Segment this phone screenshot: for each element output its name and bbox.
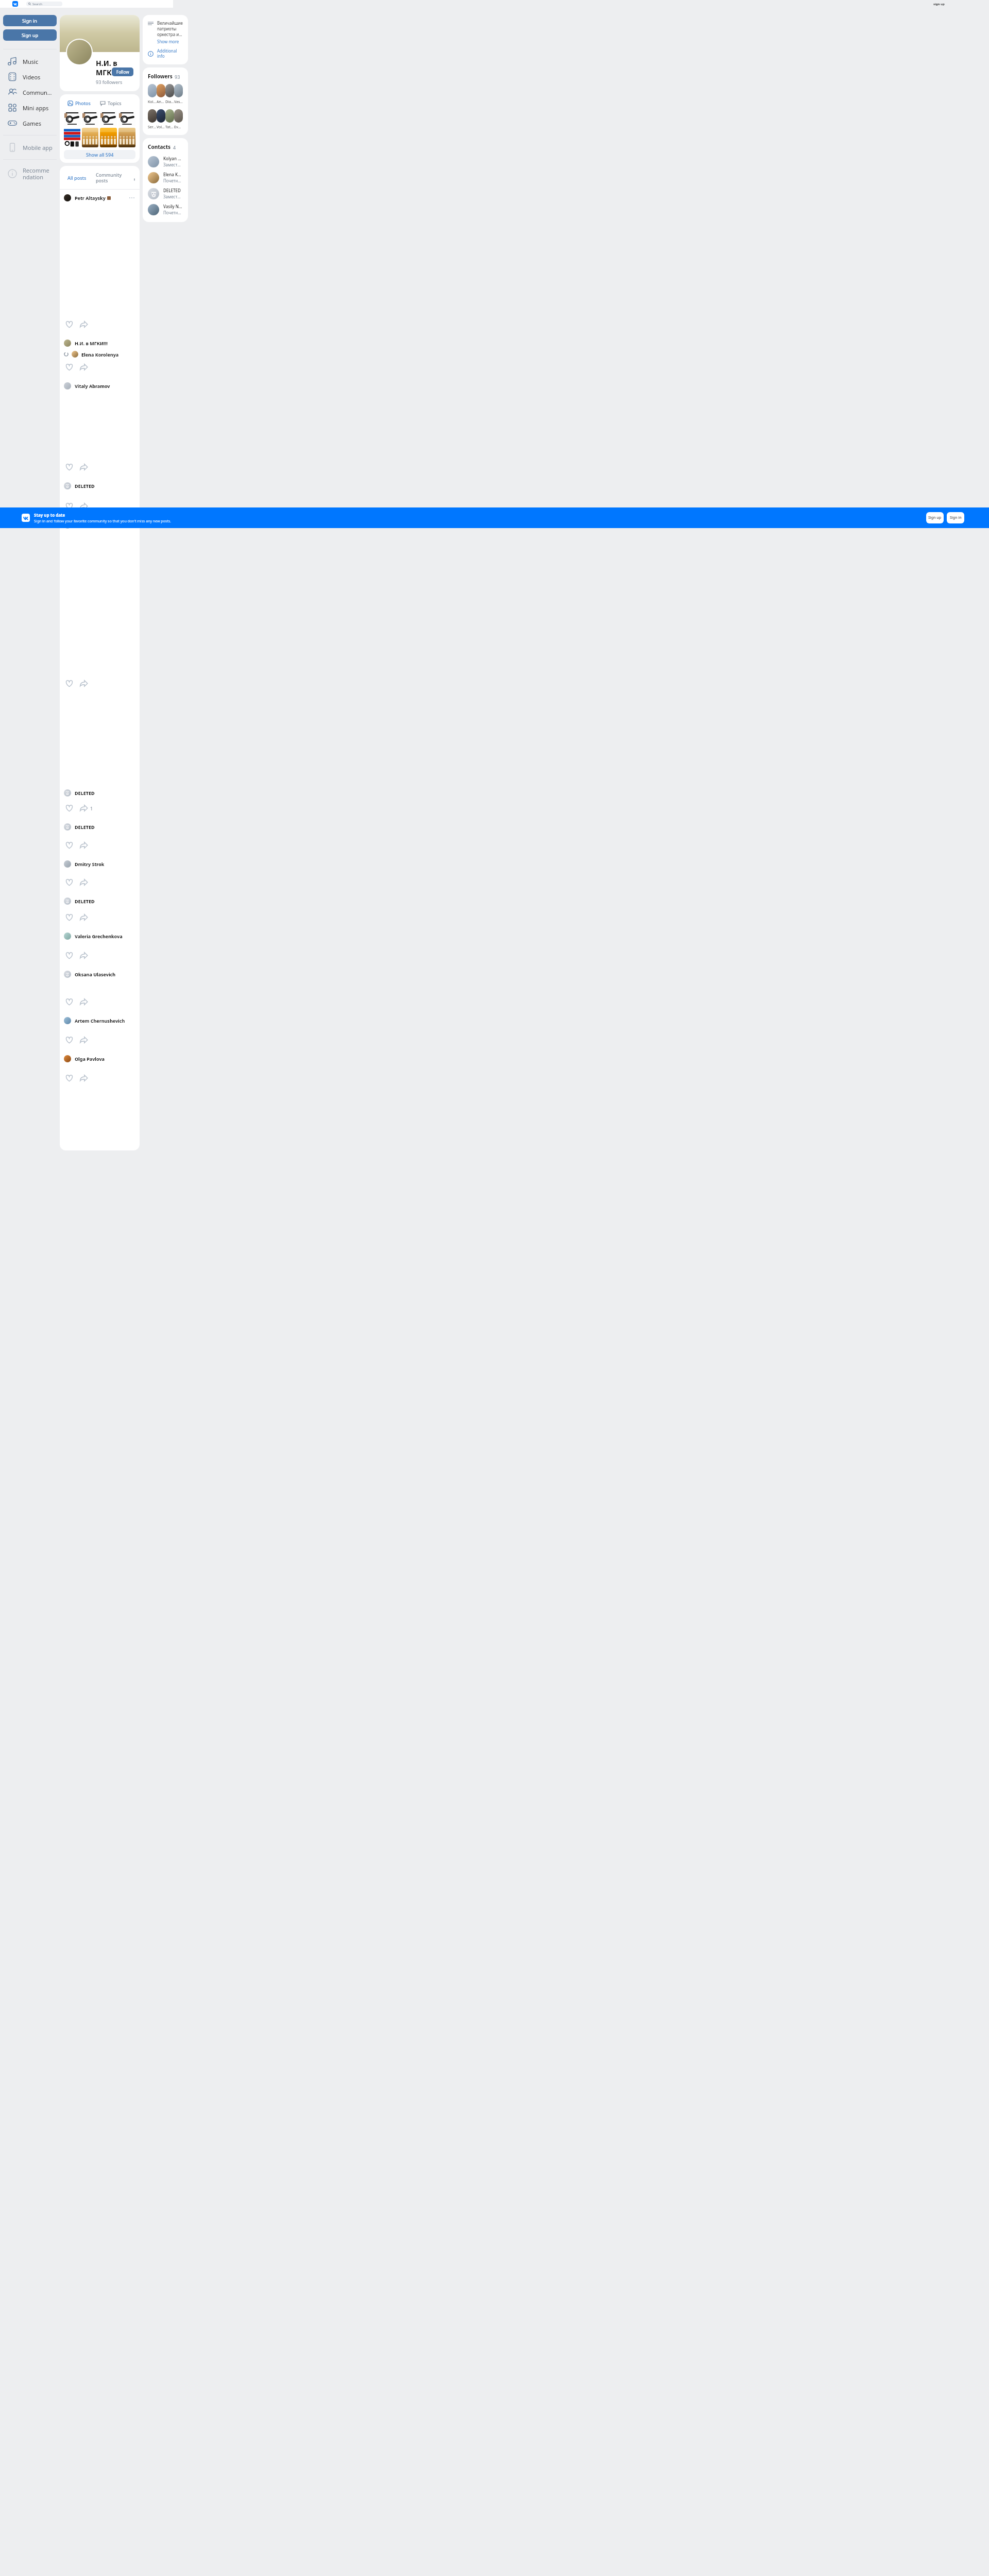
button[interactable]: Like <box>64 319 75 330</box>
button[interactable]: Saniš Filippovich <box>60 517 140 694</box>
button[interactable]: Н.И. в МГКИ!!! <box>60 335 140 378</box>
button[interactable] <box>67 40 92 64</box>
button[interactable]: Share <box>78 950 89 961</box>
button[interactable]: Show more <box>157 39 179 44</box>
button[interactable]: Like <box>64 877 75 888</box>
button[interactable]: All posts <box>64 173 90 183</box>
other: Like <box>65 804 74 812</box>
button[interactable]: sign up <box>933 2 945 6</box>
button[interactable]: Topics <box>96 98 125 108</box>
staticText: DELETED <box>75 483 95 489</box>
button[interactable]: Sign up <box>3 29 57 41</box>
staticText: Sign in <box>950 515 962 520</box>
button[interactable]: Vitaly Abramov <box>60 378 140 478</box>
button[interactable]: Vasily Nevmerzhitsky <box>148 202 183 217</box>
button[interactable] <box>82 111 98 126</box>
button[interactable]: Kolyan <box>148 84 157 105</box>
button[interactable]: Share <box>78 501 89 512</box>
button[interactable]: Recommendation technologies used <box>3 164 57 183</box>
button[interactable]: DELETED <box>60 785 140 819</box>
button[interactable]: Mini apps <box>3 100 57 115</box>
button[interactable]: Dmitry Strok <box>60 856 140 893</box>
staticText: 4 <box>173 144 176 150</box>
button[interactable]: Tatyana <box>165 109 174 130</box>
button[interactable]: Music <box>3 54 57 69</box>
button[interactable]: Share <box>78 996 89 1007</box>
button[interactable]: Show all 594 <box>64 150 135 159</box>
button[interactable]: Like <box>64 462 75 472</box>
button[interactable]: Diana <box>165 84 174 105</box>
button[interactable]: DELETED <box>60 478 140 517</box>
other: Like <box>65 320 74 329</box>
button[interactable]: Volga <box>157 109 165 130</box>
button[interactable]: Like <box>64 912 75 923</box>
button[interactable]: Sergey <box>148 109 157 130</box>
button[interactable]: Share <box>78 1073 89 1083</box>
button[interactable]: Share <box>78 912 89 923</box>
other: Share <box>79 679 88 688</box>
staticText: Diana <box>165 99 174 105</box>
button[interactable]: Olga Pavlova <box>60 1050 140 1089</box>
button[interactable]: Petr Altaysky <box>60 190 140 335</box>
button[interactable]: DELETED <box>60 819 140 856</box>
button[interactable]: Oksana Ulasevich <box>60 966 140 1012</box>
button[interactable]: Additional info <box>148 48 183 59</box>
button[interactable]: Elena Korolenya <box>148 170 183 185</box>
staticText: Community posts <box>96 172 131 184</box>
button[interactable]: Communities <box>3 84 57 100</box>
other: Like <box>65 951 74 960</box>
button[interactable]: Games <box>3 115 57 131</box>
button[interactable] <box>100 128 117 147</box>
button[interactable]: VK home <box>12 1 18 7</box>
staticText: Sign in <box>22 18 38 24</box>
button[interactable]: Share <box>78 1035 89 1045</box>
button[interactable]: Like <box>64 950 75 961</box>
button[interactable]: Photos <box>64 98 94 108</box>
button[interactable] <box>82 128 98 147</box>
button[interactable]: Share <box>78 462 89 472</box>
button[interactable]: Share <box>78 678 89 689</box>
button[interactable]: DELETED <box>148 186 183 201</box>
button[interactable]: Share <box>78 877 89 888</box>
button[interactable]: Sign in <box>947 512 964 523</box>
button[interactable] <box>118 128 135 147</box>
button[interactable]: Mobile app <box>3 140 57 155</box>
button[interactable]: Videos <box>3 69 57 84</box>
button[interactable]: Like <box>64 803 75 814</box>
button[interactable]: Sign in <box>3 15 57 26</box>
button[interactable]: Anastasia <box>157 84 165 105</box>
other: Share <box>79 804 88 812</box>
button[interactable]: Like <box>64 362 75 372</box>
button[interactable]: Valeria Grechenkova <box>60 928 140 966</box>
button[interactable]: Share <box>78 840 89 851</box>
button[interactable]: Sign up <box>926 512 944 523</box>
button[interactable]: Like <box>64 840 75 851</box>
staticText: DELETED <box>75 824 95 830</box>
button[interactable]: Like <box>64 1035 75 1045</box>
staticText: Величайшие патриоты оркестра и фольклора… <box>157 20 183 37</box>
other: Like <box>65 1036 74 1044</box>
button[interactable]: Like <box>64 996 75 1007</box>
button[interactable]: Follow <box>112 67 133 76</box>
button[interactable]: Share <box>78 362 89 372</box>
staticText: 93 followers <box>96 79 123 85</box>
button[interactable]: Kolyan Suschestvuyuschy <box>148 154 183 169</box>
button[interactable]: Artem Chernushevich <box>60 1012 140 1050</box>
button[interactable]: Share <box>78 803 94 814</box>
button[interactable] <box>100 111 117 126</box>
button[interactable]: Vasya <box>174 84 183 105</box>
button[interactable]: DELETED <box>60 893 140 928</box>
other: Share <box>79 913 88 922</box>
button[interactable]: Like <box>64 1073 75 1083</box>
button[interactable]: Like <box>64 678 75 689</box>
button[interactable]: Share <box>78 319 89 330</box>
button[interactable]: Community posts <box>92 170 134 186</box>
staticText: Заместитель Радомана <box>163 162 183 167</box>
button[interactable] <box>64 128 80 147</box>
button[interactable]: Like <box>64 501 75 512</box>
button[interactable]: Evgenia <box>174 109 183 130</box>
button[interactable]: Search <box>26 2 62 6</box>
staticText: Н.И. в МГКИ!!! <box>96 58 140 77</box>
button[interactable] <box>118 111 135 126</box>
button[interactable] <box>64 111 80 126</box>
